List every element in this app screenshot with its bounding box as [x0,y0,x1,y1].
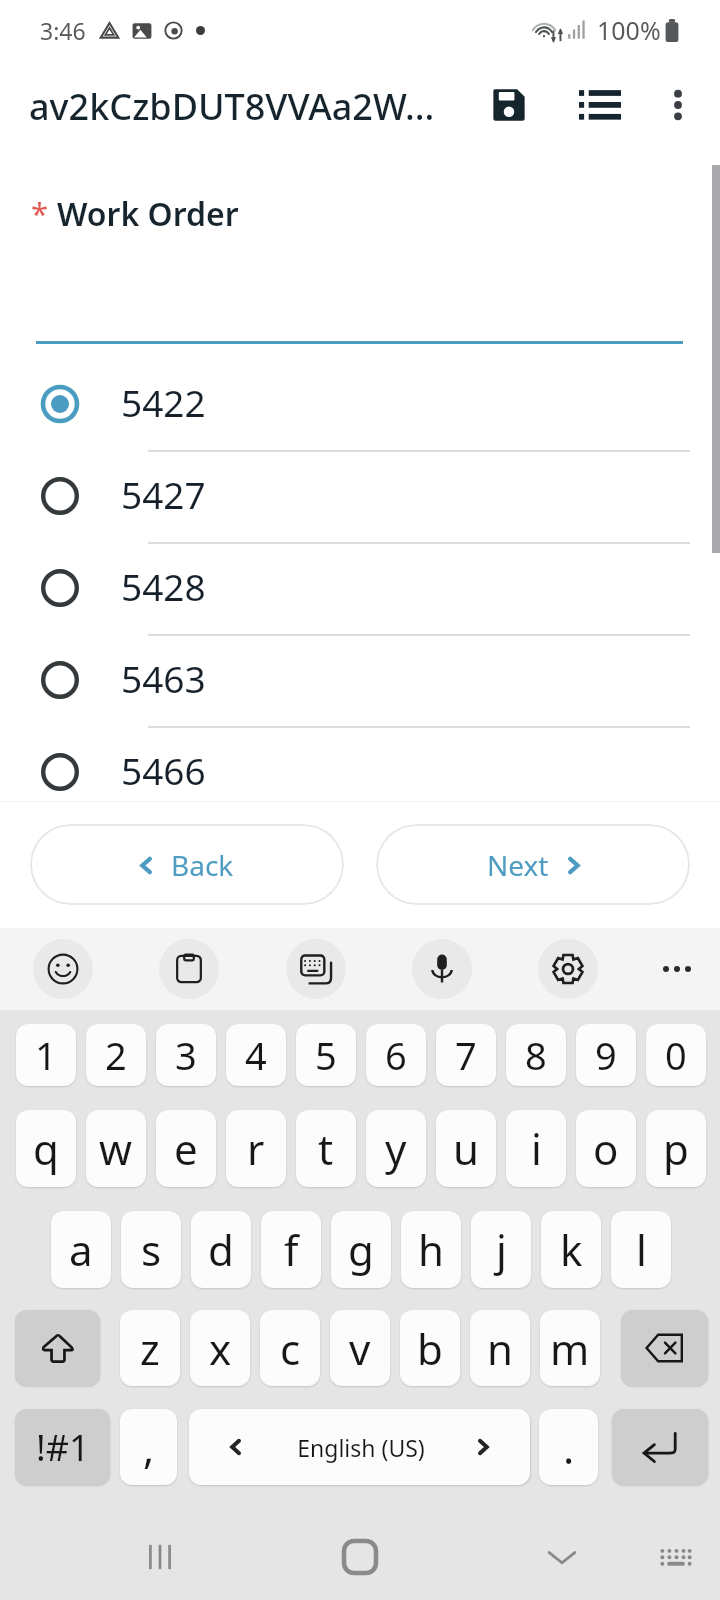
staticText: * [31,192,49,234]
button[interactable]: i [506,1110,566,1187]
button[interactable]: l [611,1211,671,1288]
button[interactable]: 5428 [0,542,720,634]
staticText: i [531,1120,542,1177]
staticText: z [140,1320,160,1377]
staticText: l [636,1221,647,1278]
button[interactable]: q [16,1110,76,1187]
button[interactable]: , [120,1409,177,1485]
staticText: q [33,1120,59,1177]
button[interactable]: Back [30,824,344,905]
button[interactable]: Settings [538,939,598,999]
button[interactable]: k [541,1211,601,1288]
staticText: 3 [175,1029,197,1081]
staticText: y [385,1120,407,1177]
button[interactable]: Clipboard [159,939,219,999]
staticText: 8 [525,1029,547,1081]
button[interactable]: Emoji [33,939,93,999]
staticText: av2kCzbDUT8VVAa2W... [29,82,435,131]
staticText: m [550,1320,590,1377]
button[interactable]: 5427 [0,450,720,542]
button[interactable]: Voice input [412,939,472,999]
button[interactable]: 5463 [0,634,720,726]
staticText: 3:46 [40,15,86,46]
button[interactable]: Keyboard modes [286,939,346,999]
staticText: 1 [35,1029,57,1081]
button[interactable]: d [191,1211,251,1288]
button[interactable]: e [156,1110,216,1187]
staticText: 4 [245,1029,267,1081]
button[interactable]: 4 [226,1024,286,1086]
button[interactable]: h [401,1211,461,1288]
staticText: 0 [665,1029,687,1081]
button[interactable]: v [330,1310,390,1386]
button[interactable]: 9 [576,1024,636,1086]
button[interactable]: o [576,1110,636,1187]
button[interactable]: y [366,1110,426,1187]
button[interactable]: b [400,1310,460,1386]
staticText: !#1 [36,1423,90,1472]
button[interactable]: m [540,1310,600,1386]
staticText: r [247,1120,265,1177]
button[interactable]: w [86,1110,146,1187]
button[interactable]: Switch keyboard [646,1527,706,1587]
button[interactable]: n [470,1310,530,1386]
button[interactable]: Home [330,1527,390,1587]
button[interactable]: 8 [506,1024,566,1086]
button[interactable]: . [539,1409,598,1485]
staticText: . [563,1419,575,1476]
button[interactable]: f [261,1211,321,1288]
staticText: g [348,1221,374,1278]
button[interactable]: t [296,1110,356,1187]
staticText: English (US) [297,1432,425,1463]
button[interactable]: g [331,1211,391,1288]
staticText: s [141,1221,162,1278]
button[interactable]: j [471,1211,531,1288]
button[interactable]: Next [376,824,690,905]
staticText: 5428 [121,561,206,611]
button[interactable]: Enter [612,1409,708,1485]
button[interactable]: English (US) [189,1409,530,1485]
staticText: h [418,1221,444,1278]
button[interactable]: Hide keyboard [532,1527,592,1587]
staticText: Work Order [57,192,239,236]
staticText: 5427 [121,469,206,519]
staticText: 5463 [121,653,206,703]
button[interactable]: Save [474,70,544,140]
staticText: n [487,1320,513,1377]
button[interactable]: Recents [130,1527,190,1587]
button[interactable]: u [436,1110,496,1187]
button[interactable]: Shift [15,1310,100,1386]
button[interactable]: x [190,1310,250,1386]
staticText: 100% [597,13,661,47]
button[interactable]: !#1 [15,1409,110,1485]
button[interactable]: 0 [646,1024,706,1086]
staticText: w [99,1120,133,1177]
button[interactable]: p [646,1110,706,1187]
button[interactable]: 2 [86,1024,146,1086]
button[interactable]: 5 [296,1024,356,1086]
staticText: 2 [105,1029,127,1081]
button[interactable]: 5466 [0,726,720,818]
staticText: 5422 [121,377,206,427]
staticText: b [417,1320,443,1377]
button[interactable]: 3 [156,1024,216,1086]
staticText: Back [171,846,234,884]
button[interactable]: 1 [16,1024,76,1086]
staticText: , [143,1419,155,1476]
button[interactable]: r [226,1110,286,1187]
button[interactable]: 6 [366,1024,426,1086]
button[interactable]: a [51,1211,111,1288]
button[interactable]: c [260,1310,320,1386]
staticText: o [593,1120,619,1177]
button[interactable]: 7 [436,1024,496,1086]
button[interactable]: List view [565,70,635,140]
button[interactable]: z [120,1310,180,1386]
staticText: f [284,1221,299,1278]
button[interactable]: More options [643,70,713,140]
button[interactable]: Backspace [621,1310,708,1386]
staticText: 5 [315,1029,337,1081]
staticText: p [663,1120,689,1177]
button[interactable]: 5422 [0,358,720,450]
button[interactable]: More [647,939,707,999]
button[interactable]: s [121,1211,181,1288]
